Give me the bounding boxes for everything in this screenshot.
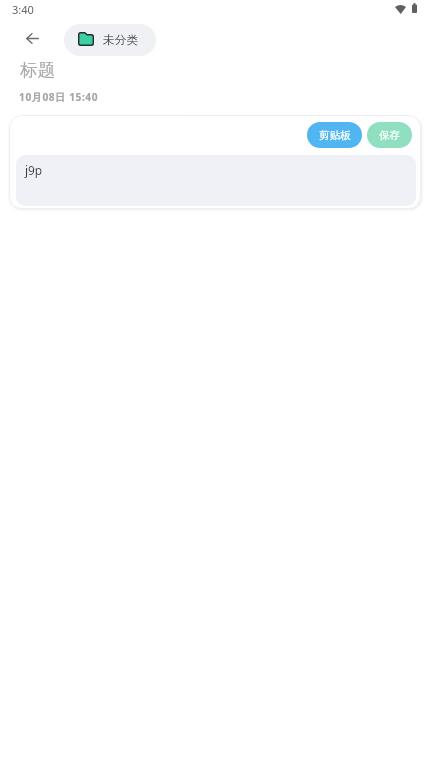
button[interactable]: 标题: [20, 59, 55, 81]
button[interactable]: Back: [14, 20, 50, 56]
button[interactable]: j9p: [16, 155, 416, 206]
button[interactable]: 未分类: [64, 24, 156, 56]
staticText: 剪贴板: [319, 129, 351, 142]
staticText: 保存: [379, 129, 400, 142]
staticText: j9p: [25, 162, 43, 178]
button[interactable]: 剪贴板: [307, 122, 362, 148]
staticText: 3:40: [12, 2, 34, 17]
button[interactable]: 保存: [367, 122, 412, 148]
staticText: 10月08日 15:40: [19, 90, 99, 104]
staticText: 未分类: [103, 33, 139, 48]
